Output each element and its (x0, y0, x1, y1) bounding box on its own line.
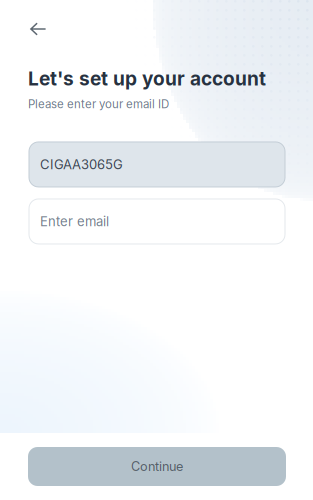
button[interactable]: Enter email (0, 187, 285, 244)
button[interactable]: Continue (0, 447, 286, 500)
staticText: Enter email (40, 213, 109, 229)
staticText: Let's set up your account (28, 67, 266, 90)
button[interactable]: Back (0, 0, 74, 44)
staticText: Please enter your email ID (28, 97, 169, 111)
staticText: Continue (131, 459, 183, 474)
staticText: CIGAA3065G (40, 156, 123, 172)
